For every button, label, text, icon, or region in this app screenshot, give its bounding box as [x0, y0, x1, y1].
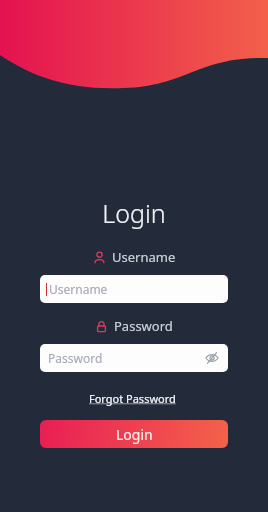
staticText: Login — [102, 196, 166, 230]
button[interactable]: Login — [40, 420, 228, 448]
button[interactable]: Toggle password visibility — [204, 350, 220, 366]
staticText: Username — [49, 281, 108, 297]
staticText: Login — [116, 425, 153, 444]
staticText: Username — [112, 248, 176, 266]
staticText: Forgot Password — [89, 391, 179, 406]
button[interactable]: Username — [40, 275, 228, 303]
staticText: Password — [114, 317, 173, 335]
button[interactable]: Password — [40, 344, 228, 372]
button[interactable]: Forgot Password — [85, 389, 183, 408]
staticText: Password — [48, 350, 103, 366]
